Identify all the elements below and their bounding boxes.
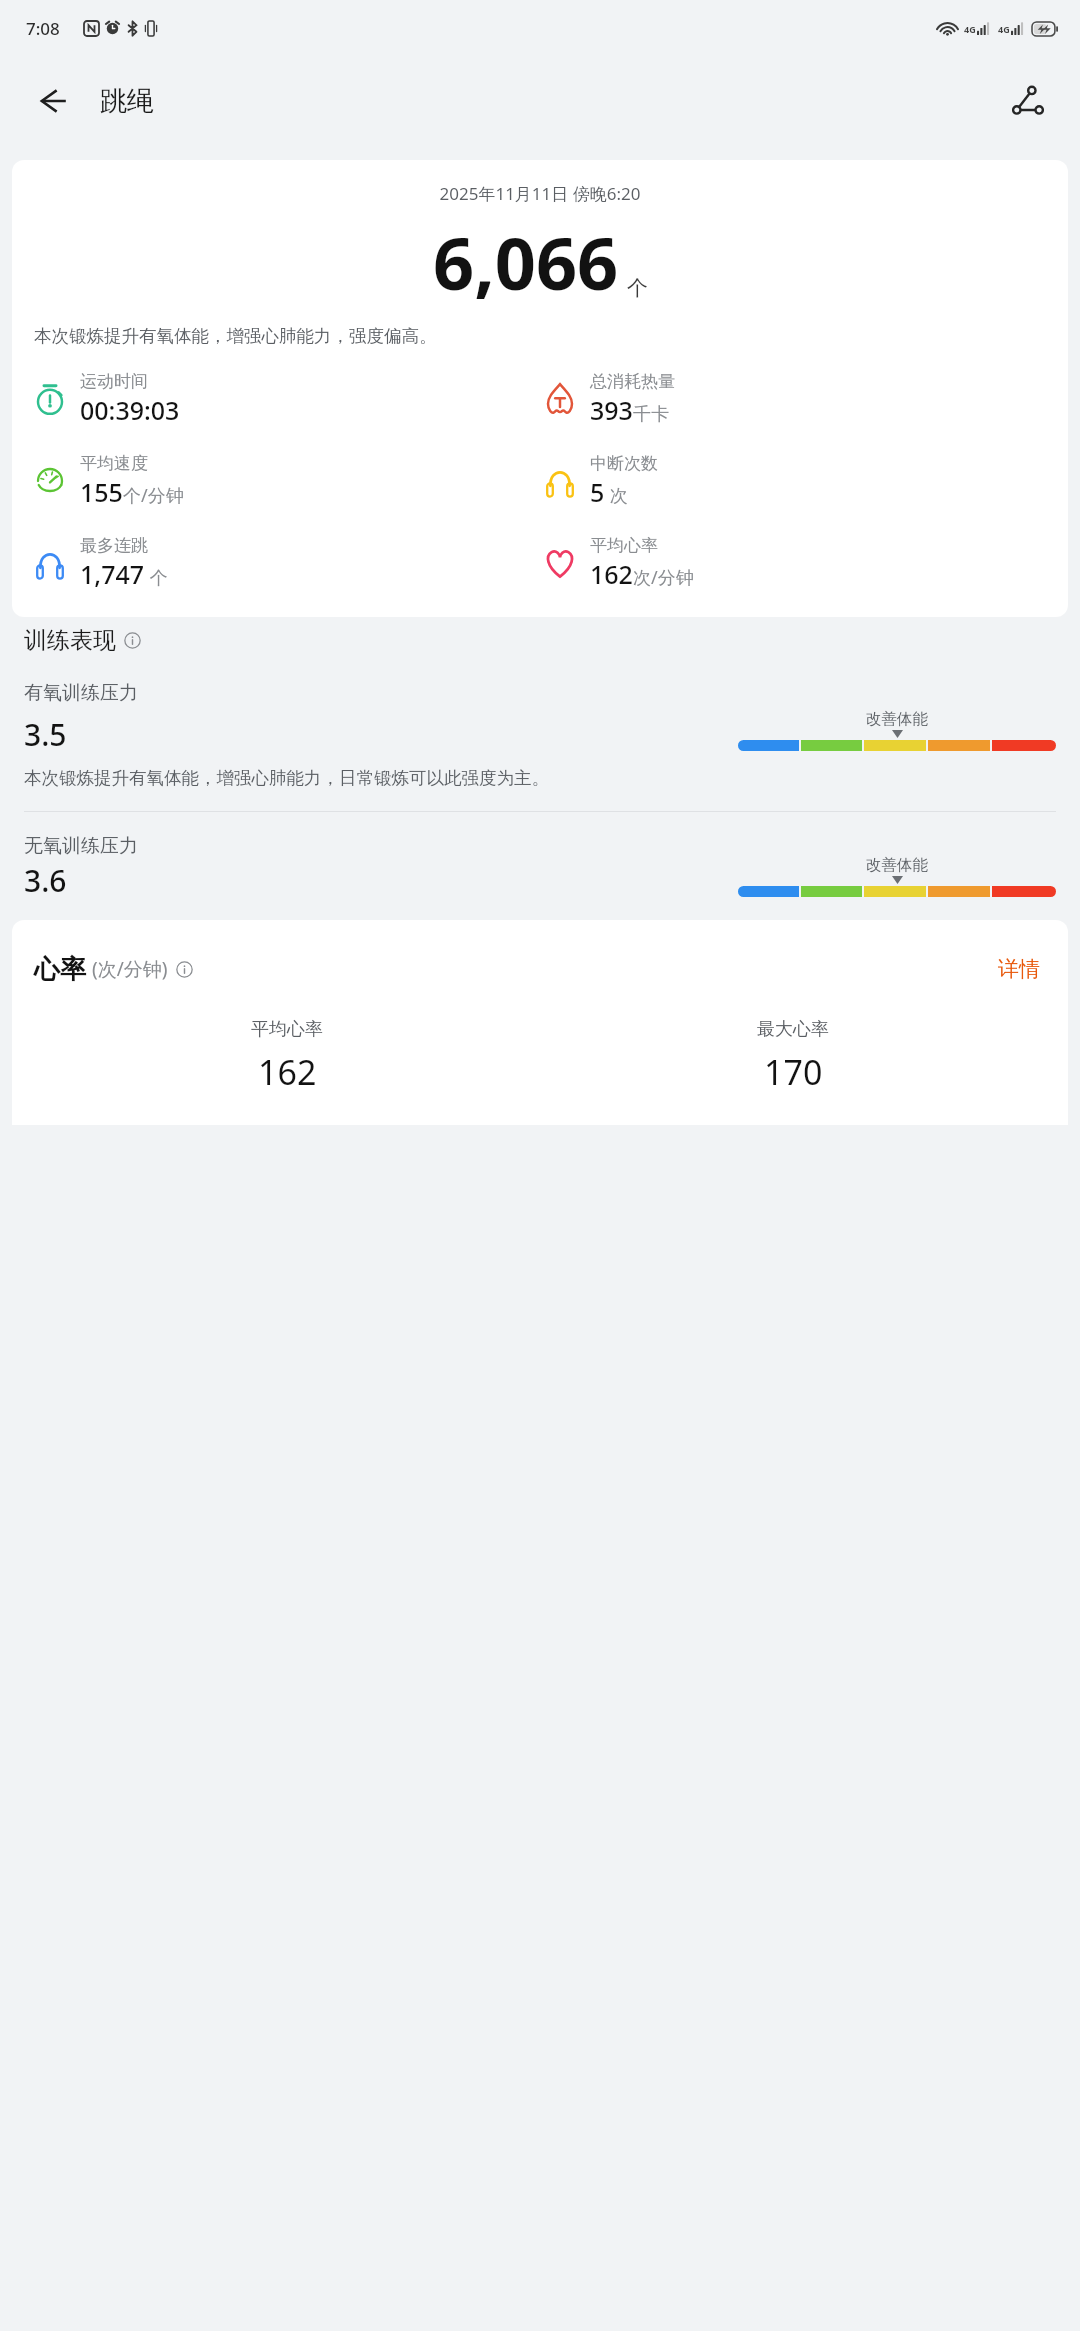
button[interactable]: 最多连跳 bbox=[30, 535, 540, 591]
staticText: 改善体能 bbox=[866, 709, 928, 729]
staticText: 本次锻炼提升有氧体能，增强心肺能力，强度偏高。 bbox=[34, 325, 1046, 347]
staticText: 训练表现 bbox=[24, 626, 116, 655]
staticText: 总消耗热量 bbox=[590, 371, 675, 392]
button[interactable]: 详情 bbox=[992, 950, 1046, 988]
staticText: 7:08 bbox=[26, 17, 60, 40]
staticText: 393 bbox=[590, 393, 633, 427]
button[interactable]: Back bbox=[24, 73, 80, 129]
staticText: 170 bbox=[764, 1049, 823, 1095]
button[interactable]: 平均心率 bbox=[540, 535, 1050, 591]
staticText: 跳绳 bbox=[100, 84, 154, 118]
button[interactable]: 总消耗热量 bbox=[540, 371, 1050, 427]
staticText: 最多连跳 bbox=[80, 535, 148, 556]
button[interactable]: 2025年11月11日 傍晚6:20 bbox=[12, 160, 1068, 617]
staticText: 155 bbox=[80, 475, 123, 509]
staticText: 个 bbox=[627, 275, 648, 301]
staticText: 个 bbox=[145, 565, 168, 590]
staticText: 运动时间 bbox=[80, 371, 148, 392]
staticText: 最大心率 bbox=[757, 1018, 829, 1041]
staticText: 平均心率 bbox=[590, 535, 658, 556]
staticText: 详情 bbox=[998, 956, 1040, 982]
staticText: 有氧训练压力 bbox=[24, 681, 138, 705]
staticText: 4G bbox=[998, 23, 1010, 35]
staticText: 本次锻炼提升有氧体能，增强心肺能力，日常锻炼可以此强度为主。 bbox=[24, 767, 549, 789]
staticText: 1,747 bbox=[80, 557, 145, 591]
staticText: 千卡 bbox=[633, 403, 669, 426]
staticText: 平均速度 bbox=[80, 453, 148, 474]
staticText: 6,066 bbox=[433, 213, 619, 311]
staticText: 162 bbox=[590, 557, 633, 591]
button[interactable]: 训练表现 bbox=[24, 626, 141, 655]
button[interactable]: 运动时间 bbox=[30, 371, 540, 427]
button[interactable]: 中断次数 bbox=[540, 453, 1050, 509]
staticText: 次 bbox=[605, 483, 628, 508]
staticText: 平均心率 bbox=[251, 1018, 323, 1041]
staticText: 心率 bbox=[34, 953, 86, 986]
button[interactable]: 平均速度 bbox=[30, 453, 540, 509]
staticText: 中断次数 bbox=[590, 453, 658, 474]
staticText: 3.6 bbox=[24, 860, 67, 901]
staticText: 2025年11月11日 傍晚6:20 bbox=[30, 182, 1050, 205]
staticText: 4G bbox=[964, 23, 976, 35]
staticText: 无氧训练压力 bbox=[24, 834, 138, 858]
staticText: 3.5 bbox=[24, 714, 67, 755]
staticText: 00:39:03 bbox=[80, 393, 180, 427]
staticText: 改善体能 bbox=[866, 855, 928, 875]
staticText: (次/分钟) bbox=[92, 956, 168, 982]
staticText: 次/分钟 bbox=[633, 565, 694, 590]
staticText: 个/分钟 bbox=[123, 483, 184, 508]
staticText: 5 bbox=[590, 475, 605, 509]
button[interactable]: Share bbox=[1000, 73, 1056, 129]
staticText: 162 bbox=[258, 1049, 317, 1095]
